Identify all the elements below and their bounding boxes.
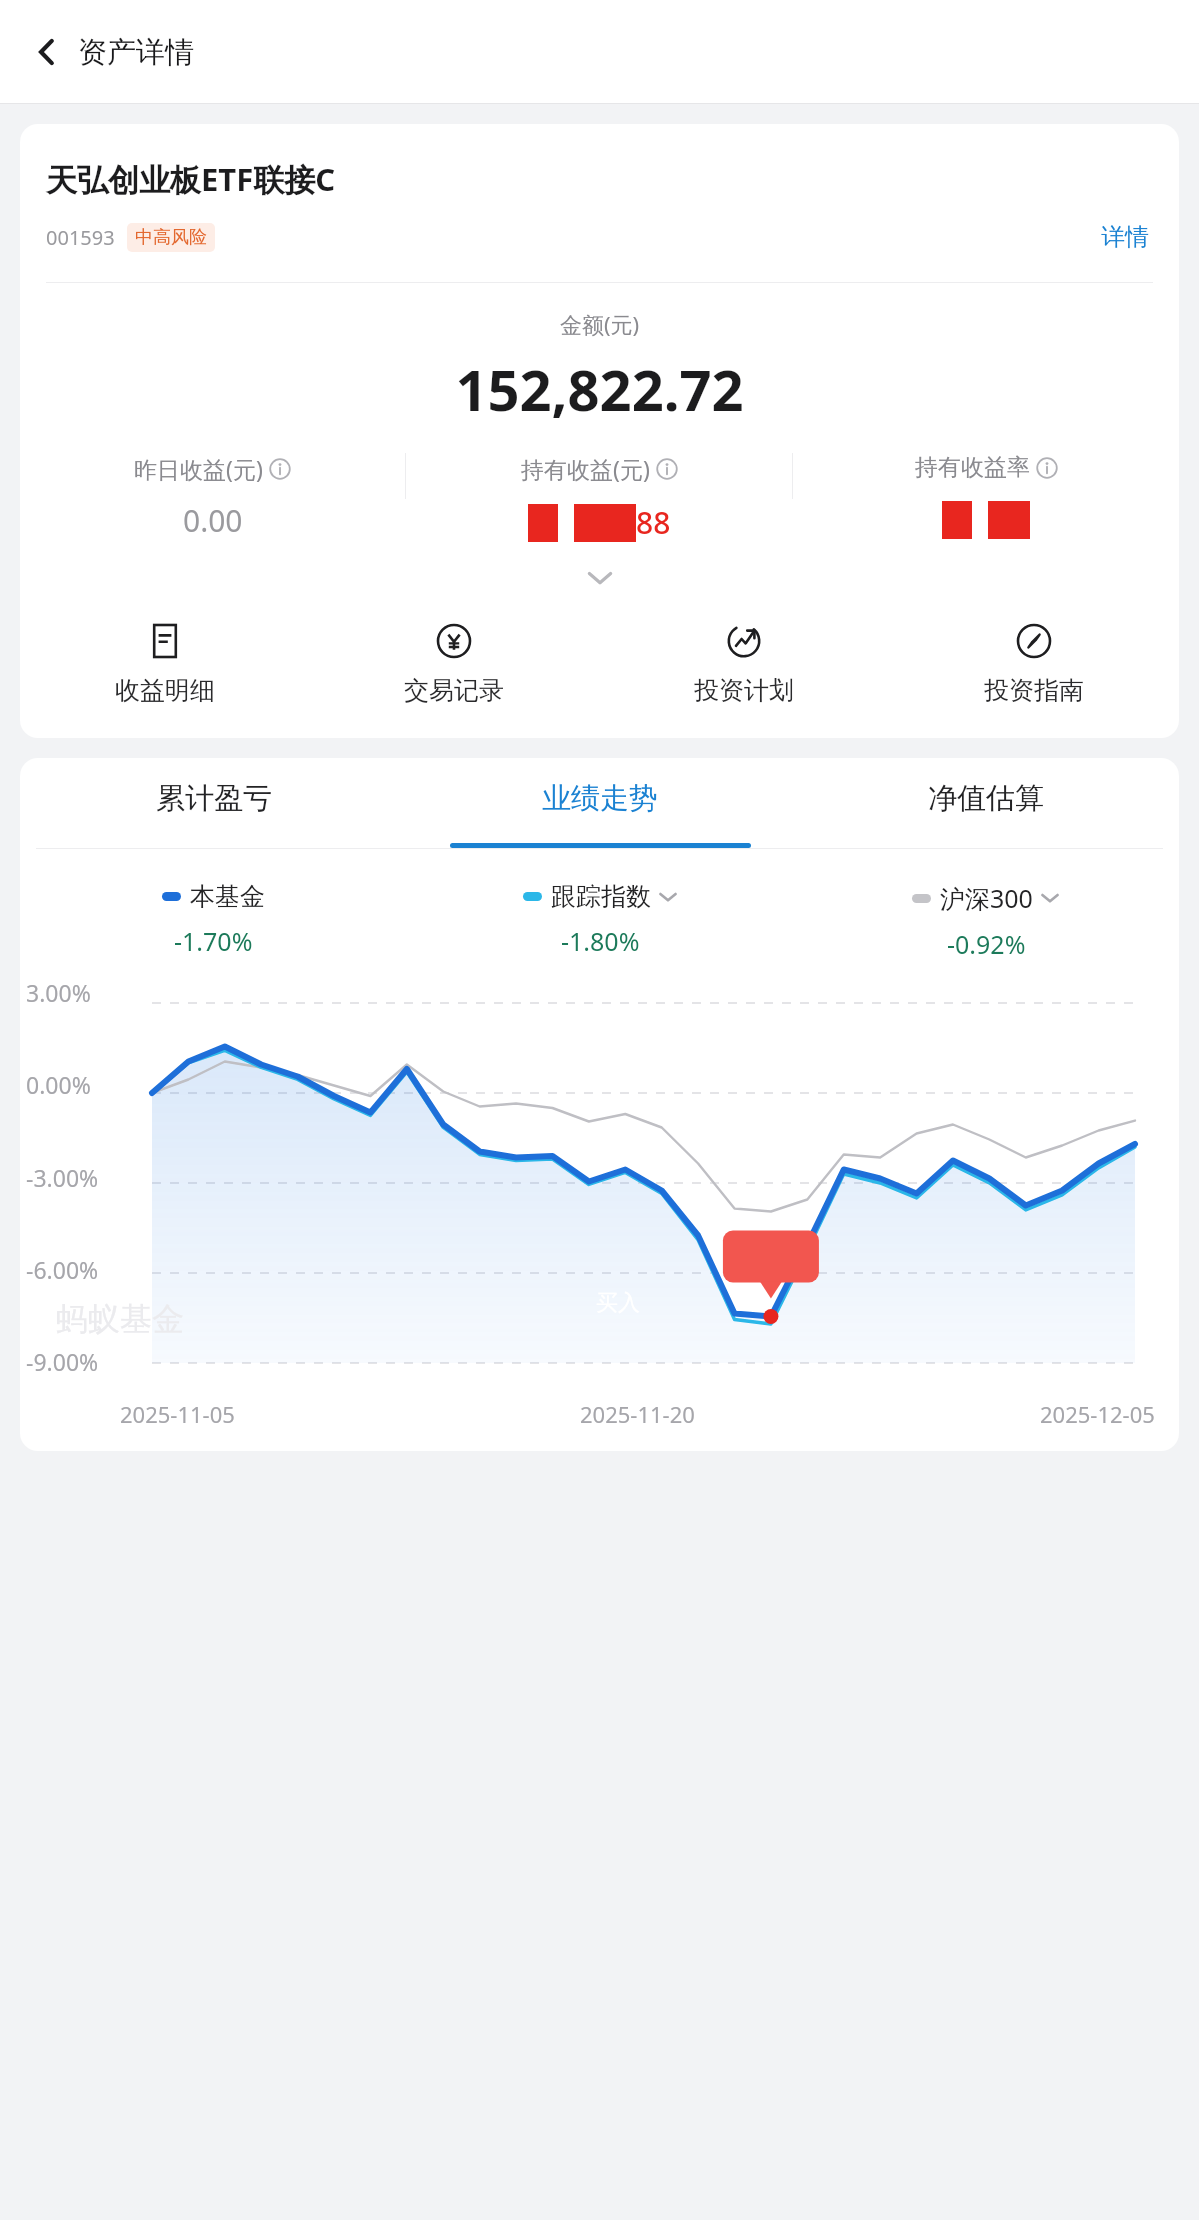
button[interactable]: Expand <box>20 563 1179 593</box>
staticText: -1.70% <box>174 924 253 958</box>
button[interactable]: 本基金 <box>20 881 407 958</box>
staticText: 2025-11-20 <box>580 1399 695 1429</box>
staticText: -0.92% <box>947 927 1026 961</box>
staticText: 2025-11-05 <box>120 1399 235 1429</box>
staticText: -9.00% <box>26 1346 99 1377</box>
button[interactable]: 净值估算 <box>793 780 1179 848</box>
staticText: -3.00% <box>26 1162 99 1193</box>
button[interactable]: 业绩走势 <box>407 780 793 848</box>
staticText: 昨日收益(元) <box>134 453 263 484</box>
staticText: 买入 <box>596 1289 640 1317</box>
button[interactable]: 交易记录 <box>309 615 599 712</box>
button[interactable]: 累计盈亏 <box>20 780 407 848</box>
staticText: 蚂蚁基金 <box>56 1299 184 1339</box>
staticText: 中高风险 <box>135 226 207 249</box>
staticText: 2025-12-05 <box>1040 1399 1155 1429</box>
button[interactable]: 跟踪指数 <box>407 881 793 958</box>
staticText: 资产详情 <box>78 34 194 71</box>
staticText: 投资指南 <box>984 675 1084 706</box>
staticText: -1.80% <box>561 924 640 958</box>
staticText: 3.00% <box>26 977 91 1008</box>
staticText: 沪深300 <box>940 881 1033 915</box>
staticText: 001593 <box>46 224 115 251</box>
button[interactable]: 收益明细 <box>20 615 309 712</box>
staticText: 持有收益率 <box>915 453 1030 482</box>
staticText: 收益明细 <box>115 675 215 706</box>
button[interactable]: 沪深300 <box>793 881 1179 961</box>
staticText: 本基金 <box>190 881 265 912</box>
button[interactable]: Back <box>18 23 76 81</box>
staticText: 天弘创业板ETF联接C <box>46 158 336 200</box>
staticText: 累计盈亏 <box>156 780 272 817</box>
button[interactable]: 投资指南 <box>889 615 1179 712</box>
button[interactable]: 投资计划 <box>599 615 889 712</box>
staticText: 业绩走势 <box>542 780 658 817</box>
staticText: 88 <box>636 502 671 543</box>
staticText: 交易记录 <box>404 675 504 706</box>
staticText: 投资计划 <box>694 675 794 706</box>
staticText: 0.00% <box>26 1069 91 1100</box>
button[interactable]: 详情 <box>1097 218 1153 256</box>
staticText: 金额(元) <box>20 309 1179 339</box>
staticText: 持有收益(元) <box>521 453 650 484</box>
staticText: 152,822.72 <box>20 351 1179 427</box>
staticText: 净值估算 <box>928 780 1044 817</box>
staticText: -6.00% <box>26 1254 99 1285</box>
staticText: 0.00 <box>183 500 243 541</box>
staticText: 详情 <box>1101 222 1149 252</box>
staticText: 跟踪指数 <box>551 881 651 912</box>
